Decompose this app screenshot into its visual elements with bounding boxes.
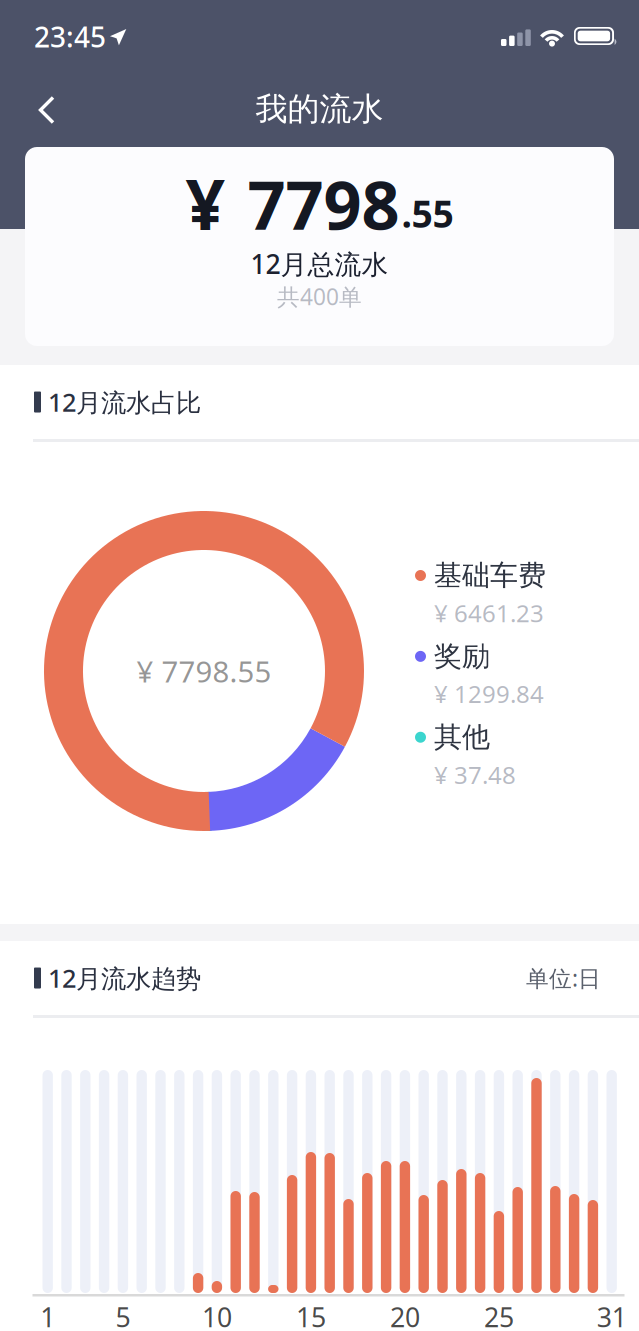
button[interactable]: Back <box>0 82 91 138</box>
staticText: 其他 <box>434 720 490 754</box>
staticText: ¥ 6461.23 <box>434 597 544 629</box>
staticText: .55 <box>401 188 453 238</box>
staticText: ¥ 37.48 <box>434 759 516 791</box>
staticText: 共400单 <box>277 281 362 311</box>
staticText: 20 <box>390 1299 420 1331</box>
staticText: 7798 <box>247 159 399 248</box>
staticText: ¥ <box>185 157 225 249</box>
staticText: 5 <box>115 1299 130 1331</box>
staticText: 31 <box>597 1299 627 1331</box>
staticText: ¥ 1299.84 <box>434 678 544 710</box>
staticText: 我的流水 <box>255 89 383 129</box>
staticText: 23:45 <box>34 18 106 55</box>
staticText: 1 <box>40 1299 55 1331</box>
staticText: 25 <box>484 1299 514 1331</box>
staticText: 基础车费 <box>434 558 546 593</box>
staticText: ¥ 7798.55 <box>136 651 271 690</box>
staticText: 10 <box>202 1299 232 1331</box>
staticText: 12月流水趋势 <box>48 961 201 995</box>
staticText: 15 <box>296 1299 326 1331</box>
staticText: 12月总流水 <box>250 246 388 281</box>
staticText: 单位:日 <box>526 963 601 993</box>
staticText: 奖励 <box>434 639 490 674</box>
staticText: 12月流水占比 <box>48 385 201 419</box>
